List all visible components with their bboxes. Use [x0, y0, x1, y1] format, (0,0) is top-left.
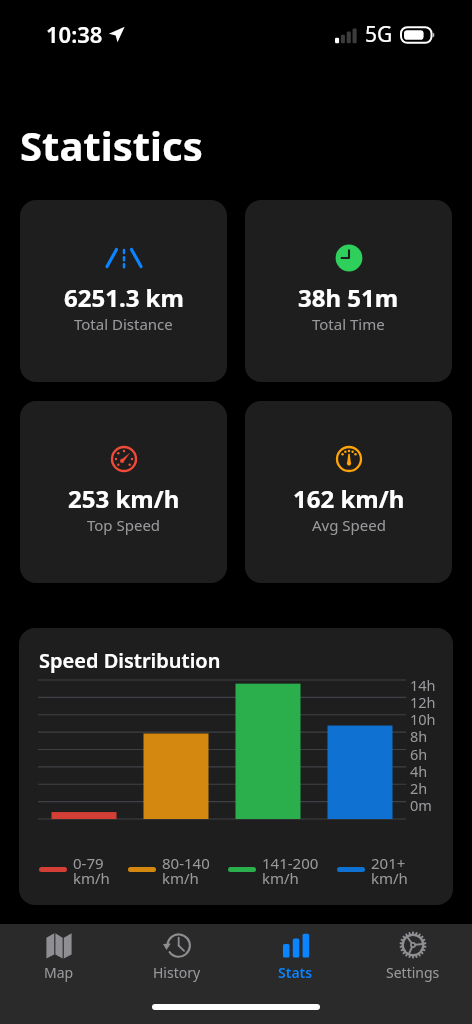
staticText: 8h: [410, 726, 428, 746]
button[interactable]: Settings: [354, 924, 472, 994]
staticText: Top Speed: [87, 515, 161, 535]
button[interactable]: 253 km/h: [20, 401, 227, 583]
button[interactable]: Stats: [236, 924, 354, 994]
button[interactable]: 162 km/h: [245, 401, 452, 583]
staticText: 141-200: [262, 853, 319, 873]
staticText: 38h 51m: [298, 281, 399, 314]
staticText: 6251.3 km: [64, 281, 184, 314]
staticText: Total Distance: [74, 314, 173, 334]
staticText: 162 km/h: [293, 482, 405, 515]
staticText: km/h: [371, 868, 408, 888]
staticText: 0-79: [73, 853, 104, 873]
button[interactable]: 38h 51m: [245, 200, 452, 382]
staticText: 0m: [410, 795, 432, 815]
staticText: Total Time: [312, 314, 385, 334]
staticText: 10:38: [46, 19, 103, 49]
staticText: 4h: [410, 761, 428, 781]
staticText: 2h: [410, 778, 428, 798]
staticText: km/h: [162, 868, 199, 888]
staticText: 201+: [371, 853, 406, 873]
staticText: 10h: [410, 709, 436, 729]
staticText: Avg Speed: [312, 515, 386, 535]
staticText: km/h: [73, 868, 110, 888]
staticText: 14h: [410, 675, 436, 695]
staticText: km/h: [262, 868, 299, 888]
button[interactable]: Map: [0, 924, 118, 994]
staticText: Settings: [386, 963, 440, 982]
staticText: 5G: [365, 20, 393, 49]
staticText: Statistics: [20, 118, 203, 172]
staticText: Map: [44, 963, 74, 982]
staticText: Speed Distribution: [39, 647, 221, 674]
staticText: Stats: [278, 963, 313, 982]
staticText: 12h: [410, 692, 436, 712]
staticText: History: [153, 963, 201, 982]
staticText: 80-140: [162, 853, 210, 873]
staticText: 253 km/h: [68, 482, 180, 515]
button[interactable]: History: [118, 924, 236, 994]
button[interactable]: 6251.3 km: [20, 200, 227, 382]
staticText: 6h: [410, 744, 428, 764]
